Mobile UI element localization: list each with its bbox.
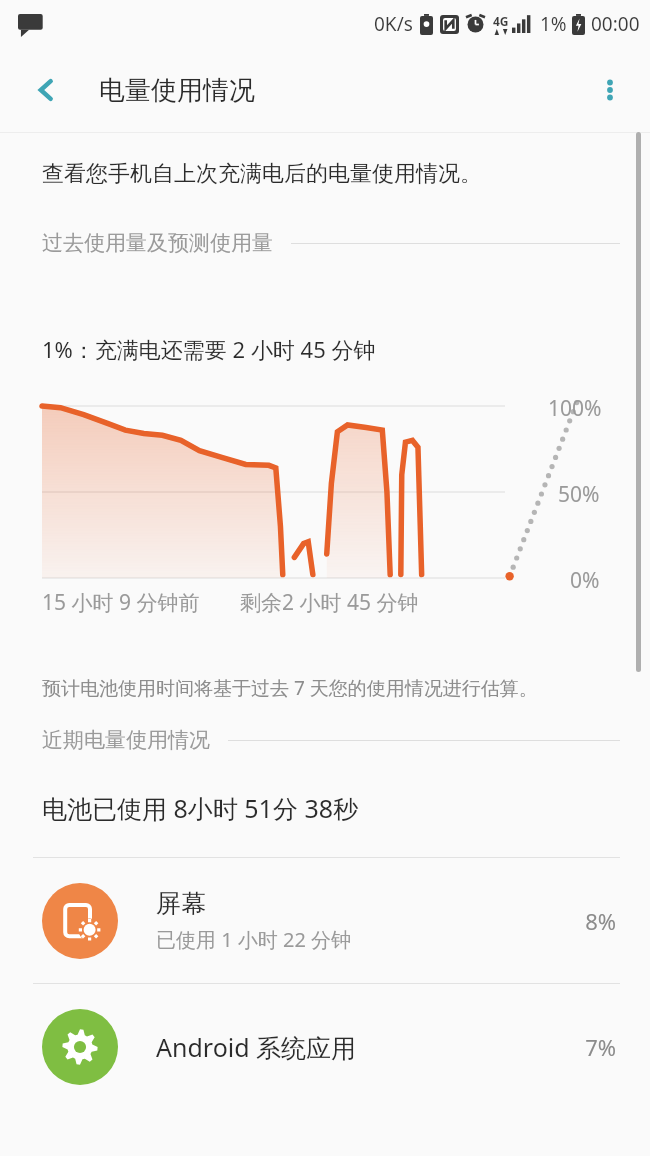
staticText: 查看您手机自上次充满电后的电量使用情况。	[42, 160, 482, 188]
button[interactable]: 屏幕	[0, 858, 650, 983]
staticText: 00:00	[591, 11, 640, 37]
staticText: 1%	[540, 11, 567, 37]
staticText: 8%	[585, 906, 616, 936]
staticText: 预计电池使用时间将基于过去 7 天您的使用情况进行估算。	[42, 675, 538, 701]
staticText: 4G	[493, 13, 509, 29]
button[interactable]: Back	[22, 66, 70, 114]
button[interactable]: Android 系统应用	[0, 984, 650, 1109]
staticText: 1%：充满电还需要 2 小时 45 分钟	[42, 334, 376, 364]
staticText: Android 系统应用	[156, 1030, 357, 1064]
staticText: 100%	[548, 394, 602, 423]
staticText: 过去使用量及预测使用量	[42, 230, 273, 256]
button[interactable]: More options	[584, 64, 636, 116]
staticText: 0%	[570, 566, 600, 595]
staticText: 近期电量使用情况	[42, 727, 210, 753]
staticText: 15 小时 9 分钟前	[42, 588, 200, 617]
staticText: 50%	[558, 480, 600, 509]
staticText: 已使用 1 小时 22 分钟	[156, 926, 352, 953]
staticText: 电量使用情况	[99, 74, 255, 107]
staticText: 7%	[585, 1032, 616, 1062]
staticText: 电池已使用 8小时 51分 38秒	[42, 791, 359, 825]
staticText: 0K/s	[374, 11, 413, 37]
staticText: 剩余2 小时 45 分钟	[240, 588, 419, 617]
staticText: 屏幕	[156, 888, 206, 919]
